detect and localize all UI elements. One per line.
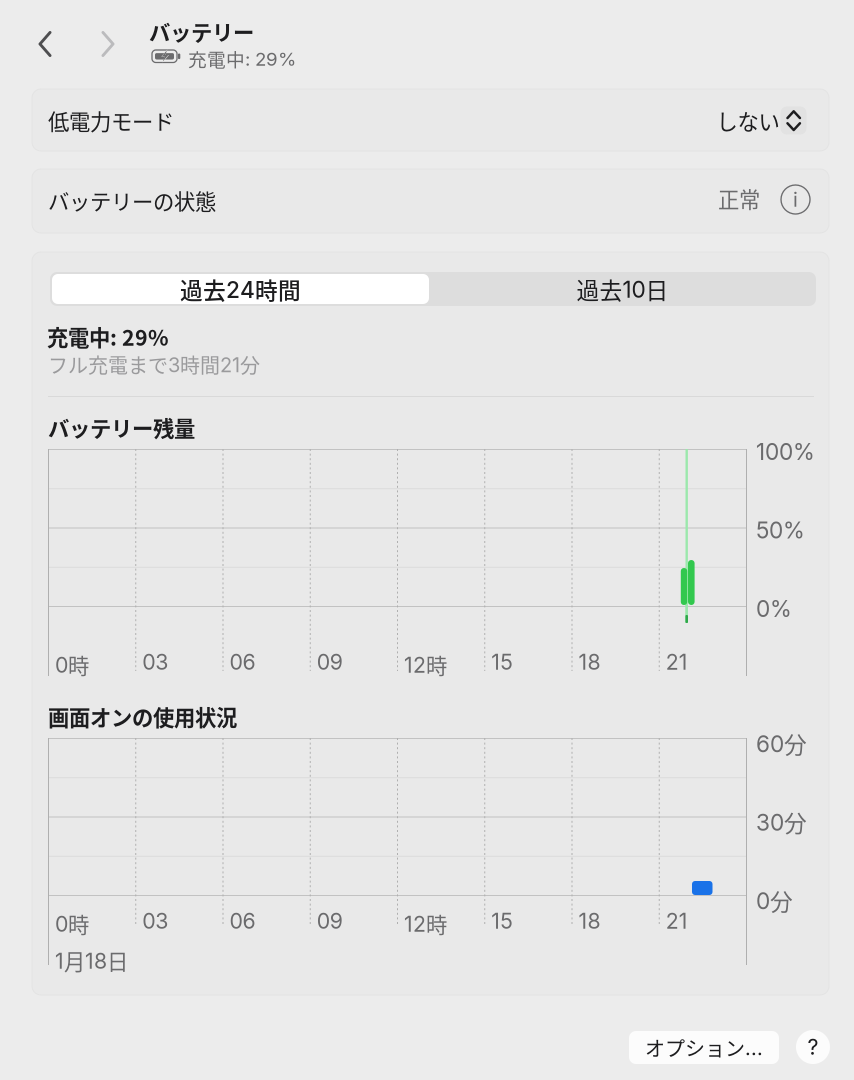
button[interactable]: 戻る xyxy=(27,25,63,63)
staticText: しない xyxy=(716,105,779,136)
button[interactable]: 進む xyxy=(90,25,126,63)
button[interactable]: 過去24時間 xyxy=(52,274,429,304)
button[interactable]: しない xyxy=(716,106,809,134)
staticText: フル充電まで3時間21分 xyxy=(48,350,260,379)
staticText: 12時 xyxy=(404,649,447,680)
staticText: 12時 xyxy=(404,908,447,939)
staticText: バッテリー残量 xyxy=(48,412,195,443)
staticText: 1月18日 xyxy=(55,945,128,976)
button[interactable]: バッテリーの状態について xyxy=(781,185,810,214)
staticText: 60分 xyxy=(756,727,807,760)
staticText: 0時 xyxy=(55,908,89,939)
staticText: 21 xyxy=(666,649,688,675)
staticText: 低電力モード xyxy=(48,105,174,136)
button[interactable]: ヘルプ xyxy=(796,1030,830,1064)
staticText: 0分 xyxy=(756,884,793,917)
staticText: 正常 xyxy=(718,183,760,214)
staticText: 30分 xyxy=(756,805,807,838)
staticText: 09 xyxy=(317,908,343,934)
staticText: 18 xyxy=(578,649,600,675)
staticText: 09 xyxy=(317,649,343,675)
button[interactable]: オプション... xyxy=(629,1031,779,1064)
staticText: バッテリーの状態 xyxy=(48,185,216,216)
staticText: 0% xyxy=(756,595,792,622)
staticText: ? xyxy=(807,1034,818,1060)
staticText: 15 xyxy=(491,649,513,675)
staticText: オプション... xyxy=(645,1033,763,1062)
staticText: バッテリー xyxy=(149,16,254,47)
staticText: 画面オンの使用状況 xyxy=(48,701,237,732)
staticText: 03 xyxy=(142,908,168,934)
staticText: 過去24時間 xyxy=(180,273,301,305)
staticText: 18 xyxy=(578,908,600,934)
staticText: 03 xyxy=(142,649,168,675)
staticText: 100% xyxy=(756,438,815,465)
staticText: 21 xyxy=(666,908,688,934)
staticText: 50% xyxy=(756,516,805,544)
staticText: i xyxy=(793,187,798,212)
staticText: 過去10日 xyxy=(576,273,668,305)
staticText: 15 xyxy=(491,908,513,934)
button[interactable]: 過去10日 xyxy=(431,274,814,304)
staticText: 0時 xyxy=(55,649,89,680)
staticText: 充電中: 29% xyxy=(188,45,296,72)
staticText: 06 xyxy=(229,649,255,675)
staticText: 06 xyxy=(229,908,255,934)
staticText: 充電中: 29% xyxy=(47,321,169,352)
